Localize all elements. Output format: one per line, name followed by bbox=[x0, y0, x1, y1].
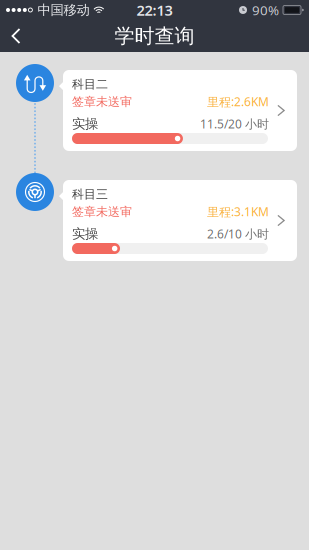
staticText: 学时查询 bbox=[114, 24, 194, 48]
staticText: 里程:3.1KM bbox=[207, 204, 269, 220]
staticText: 实操 bbox=[72, 116, 98, 132]
staticText: 22:13 bbox=[136, 0, 172, 20]
staticText: 2.6/10 小时 bbox=[207, 226, 269, 242]
staticText: 签章未送审 bbox=[72, 204, 132, 219]
staticText: 里程:2.6KM bbox=[207, 94, 269, 110]
button[interactable]: 科目三 bbox=[63, 180, 297, 261]
staticText: 科目二 bbox=[72, 77, 108, 92]
staticText: 签章未送审 bbox=[72, 94, 132, 109]
staticText: 中国移动 bbox=[37, 2, 89, 18]
staticText: 科目三 bbox=[72, 187, 108, 202]
staticText: 11.5/20 小时 bbox=[200, 116, 269, 132]
button[interactable]: 科目二 bbox=[63, 70, 297, 151]
button[interactable]: Back bbox=[0, 20, 33, 52]
staticText: 实操 bbox=[72, 226, 98, 242]
staticText: 90% bbox=[252, 1, 279, 19]
